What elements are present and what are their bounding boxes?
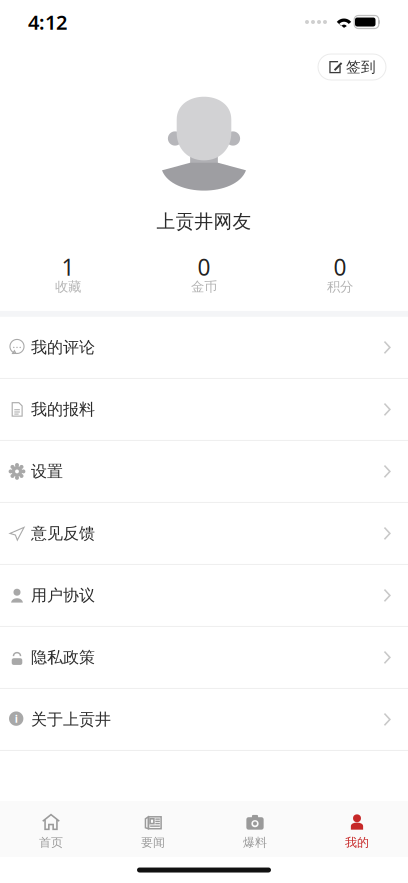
staticText: 首页 bbox=[39, 835, 63, 850]
button[interactable]: 设置 bbox=[0, 441, 408, 503]
staticText: 我的评论 bbox=[31, 338, 95, 357]
button[interactable]: 爆料 bbox=[204, 801, 306, 857]
staticText: 我的报料 bbox=[31, 400, 95, 419]
button[interactable]: 意见反馈 bbox=[0, 503, 408, 565]
staticText: 设置 bbox=[31, 462, 63, 481]
button[interactable]: 要闻 bbox=[102, 801, 204, 857]
staticText: 要闻 bbox=[141, 835, 165, 850]
staticText: 签到 bbox=[346, 58, 376, 76]
button[interactable]: 签到 bbox=[318, 54, 386, 80]
staticText: 我的 bbox=[345, 835, 369, 850]
staticText: 积分 bbox=[327, 279, 353, 295]
staticText: 4:12 bbox=[28, 9, 67, 35]
staticText: 爆料 bbox=[243, 835, 267, 850]
staticText: 1 bbox=[61, 252, 74, 282]
staticText: 收藏 bbox=[55, 279, 81, 295]
button[interactable]: 我的报料 bbox=[0, 379, 408, 441]
button[interactable]: 首页 bbox=[0, 801, 102, 857]
button[interactable]: 隐私政策 bbox=[0, 627, 408, 689]
button[interactable]: 我的评论 bbox=[0, 317, 408, 379]
button[interactable]: i bbox=[0, 689, 408, 751]
staticText: 用户协议 bbox=[31, 586, 95, 605]
staticText: 隐私政策 bbox=[31, 648, 95, 667]
staticText: 意见反馈 bbox=[31, 524, 95, 543]
button[interactable]: 我的 bbox=[306, 801, 408, 857]
staticText: 0 bbox=[333, 252, 346, 282]
staticText: 关于上贡井 bbox=[31, 710, 111, 729]
staticText: 上贡井网友 bbox=[156, 210, 251, 233]
staticText: 金币 bbox=[191, 279, 217, 295]
staticText: 0 bbox=[197, 252, 210, 282]
staticText: i bbox=[15, 711, 18, 726]
button[interactable]: 用户协议 bbox=[0, 565, 408, 627]
